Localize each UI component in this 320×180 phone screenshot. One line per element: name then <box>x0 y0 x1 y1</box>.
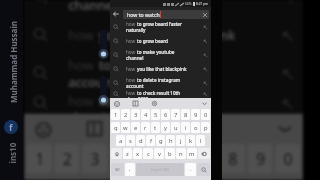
button[interactable]: how <box>110 90 211 98</box>
button[interactable]: 6 <box>161 109 170 120</box>
button[interactable]: l <box>196 135 205 146</box>
button[interactable]: . <box>185 163 196 176</box>
button[interactable]: u <box>192 179 217 180</box>
button[interactable]: 2 <box>54 144 79 174</box>
staticText: 1 <box>35 149 46 171</box>
staticText: s <box>129 137 132 145</box>
button[interactable]: how <box>24 0 303 16</box>
button[interactable]: v <box>154 148 164 159</box>
button[interactable]: how <box>110 76 211 90</box>
staticText: you like that blackpink <box>99 27 237 43</box>
button[interactable]: 3 <box>131 109 140 120</box>
staticText: u <box>174 124 178 132</box>
staticText: b <box>168 150 172 158</box>
staticText: v <box>158 150 161 158</box>
button[interactable]: Backspace <box>198 148 210 159</box>
button[interactable]: 2 <box>121 109 130 120</box>
button[interactable]: d <box>136 135 145 146</box>
staticText: how <box>126 49 137 55</box>
button[interactable]: how <box>110 48 211 62</box>
button[interactable]: k <box>186 135 195 146</box>
button[interactable]: s <box>126 135 135 146</box>
button[interactable]: how <box>110 20 211 34</box>
button[interactable]: 0 <box>201 109 210 120</box>
button[interactable]: Clipboard <box>131 99 140 108</box>
button[interactable]: More options <box>200 99 209 108</box>
button[interactable]: Emoji <box>30 116 54 141</box>
button[interactable]: 4 <box>141 109 150 120</box>
button[interactable]: f <box>146 135 155 146</box>
staticText: channel <box>68 0 118 13</box>
button[interactable]: Emoji <box>112 99 121 108</box>
staticText: n <box>179 150 183 158</box>
button[interactable]: 6 <box>165 144 190 174</box>
button[interactable]: Clipboard <box>82 116 107 141</box>
button[interactable]: Search <box>197 163 210 176</box>
button[interactable]: 3 <box>82 144 107 174</box>
button[interactable]: !#1 <box>111 163 124 176</box>
button[interactable]: 7 <box>192 144 217 174</box>
staticText: 3 <box>134 111 138 119</box>
button[interactable]: q <box>111 122 120 133</box>
button[interactable]: i <box>220 179 245 180</box>
button[interactable]: e <box>131 122 140 133</box>
button[interactable]: 8 <box>181 109 190 120</box>
button[interactable]: y <box>161 122 170 133</box>
button[interactable]: , <box>125 163 135 176</box>
button[interactable]: how <box>24 54 303 92</box>
button[interactable]: c <box>143 148 153 159</box>
button[interactable]: r <box>141 122 150 133</box>
button[interactable]: m <box>187 148 197 159</box>
button[interactable]: Back <box>110 7 122 20</box>
button[interactable]: z <box>123 148 132 159</box>
button[interactable]: i <box>181 122 190 133</box>
button[interactable]: More options <box>272 116 297 141</box>
staticText: r <box>144 124 147 132</box>
button[interactable]: b <box>165 148 175 159</box>
button[interactable]: w <box>121 122 130 133</box>
button[interactable]: 8 <box>220 144 245 174</box>
button[interactable]: Settings <box>150 99 159 108</box>
button[interactable]: how to watch <box>123 10 209 19</box>
staticText: English (UK) <box>151 168 169 172</box>
button[interactable]: o <box>191 122 200 133</box>
button[interactable]: n <box>176 148 186 159</box>
button[interactable]: 5 <box>137 144 162 174</box>
button[interactable]: how <box>24 92 303 114</box>
staticText: how to watch <box>127 11 160 18</box>
button[interactable]: 1 <box>27 144 52 174</box>
button[interactable]: h <box>166 135 175 146</box>
button[interactable]: a <box>116 135 125 146</box>
button[interactable]: x <box>133 148 142 159</box>
button[interactable]: how <box>110 62 211 76</box>
button[interactable]: t <box>151 122 160 133</box>
button[interactable]: Shift <box>111 148 122 159</box>
button[interactable]: u <box>171 122 180 133</box>
button[interactable]: 4 <box>110 144 134 174</box>
button[interactable]: 9 <box>191 109 200 120</box>
button[interactable]: g <box>156 135 165 146</box>
button[interactable]: 1 <box>111 109 120 120</box>
button[interactable]: j <box>176 135 185 146</box>
button[interactable]: 7 <box>171 109 180 120</box>
button[interactable]: 9 <box>248 144 272 174</box>
button[interactable]: Settings <box>134 116 159 141</box>
button[interactable]: 0 <box>275 144 300 174</box>
button[interactable]: how <box>110 34 211 48</box>
button[interactable]: how <box>24 16 303 54</box>
staticText: , <box>129 166 131 173</box>
button[interactable]: Space <box>136 163 184 176</box>
button[interactable]: 5 <box>151 109 160 120</box>
button[interactable]: Clear search <box>200 10 209 19</box>
staticText: how <box>126 38 137 44</box>
staticText: 7 <box>201 149 212 171</box>
button[interactable]: p <box>201 122 210 133</box>
